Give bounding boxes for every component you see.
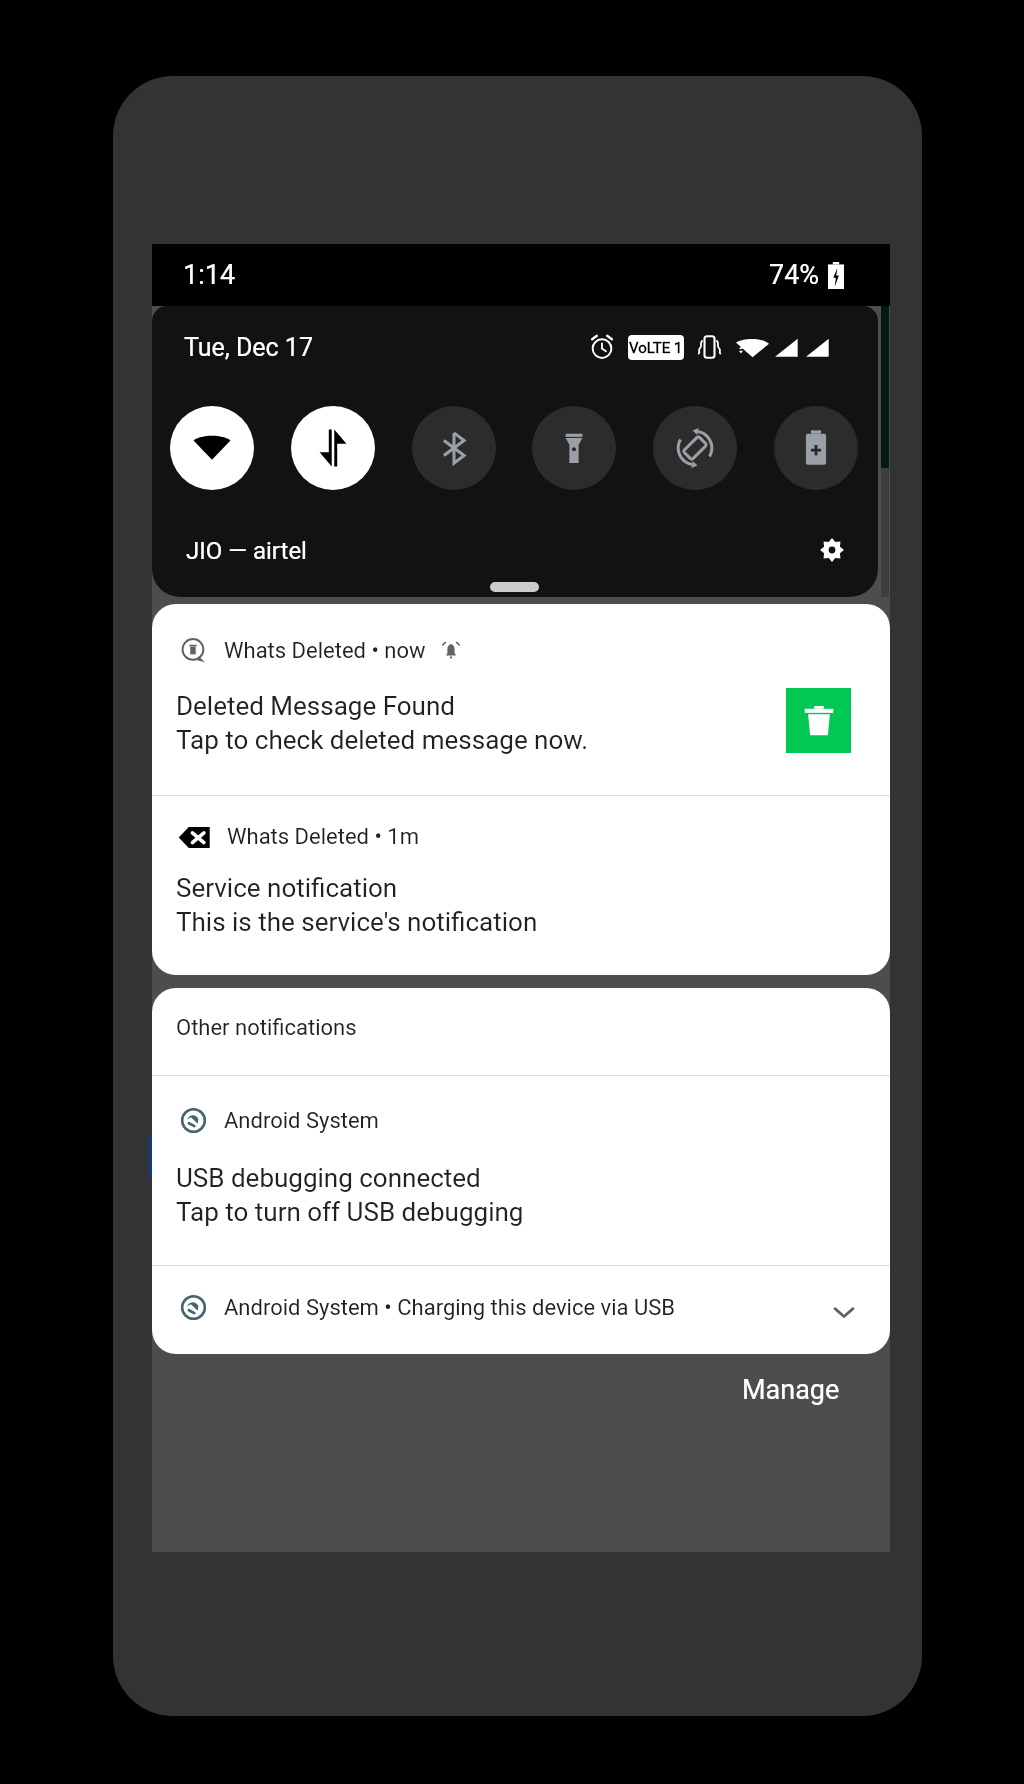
staticText: Service notification: [176, 873, 398, 903]
button[interactable]: Settings: [815, 533, 849, 567]
staticText: Whats Deleted • now: [224, 638, 426, 664]
button[interactable]: Quick setting: [170, 406, 254, 490]
button[interactable]: Other notifications: [152, 988, 890, 1075]
button[interactable]: Quick setting: [774, 406, 858, 490]
button[interactable]: Android System • Charging this device vi…: [152, 1266, 890, 1354]
staticText: 74%: [769, 259, 820, 291]
staticText: 1:14: [183, 259, 236, 291]
staticText: Tue, Dec 17: [184, 333, 313, 362]
button[interactable]: Quick setting: [291, 406, 375, 490]
staticText: Other notifications: [176, 1015, 357, 1041]
staticText: Android System • Charging this device vi…: [224, 1295, 676, 1321]
button[interactable]: Whats Deleted • 1m: [152, 796, 890, 975]
button[interactable]: Delete: [786, 688, 851, 753]
button[interactable]: Android System: [152, 1076, 890, 1265]
staticText: Tap to turn off USB debugging: [176, 1197, 524, 1227]
staticText: Deleted Message Found: [176, 691, 455, 721]
button[interactable]: Quick setting: [412, 406, 496, 490]
button[interactable]: Quick setting: [653, 406, 737, 490]
button[interactable]: Whats Deleted • now: [152, 604, 890, 795]
button[interactable]: Quick setting: [532, 406, 616, 490]
staticText: This is the service's notification: [176, 907, 538, 937]
staticText: JIO — airtel: [186, 537, 307, 565]
staticText: USB debugging connected: [176, 1163, 481, 1193]
staticText: Whats Deleted • 1m: [227, 824, 419, 850]
button[interactable]: Manage: [734, 1366, 848, 1414]
staticText: Manage: [742, 1374, 840, 1406]
staticText: VoLTE 1: [629, 339, 683, 357]
staticText: Android System: [224, 1108, 379, 1134]
staticText: Tap to check deleted message now.: [176, 725, 589, 755]
